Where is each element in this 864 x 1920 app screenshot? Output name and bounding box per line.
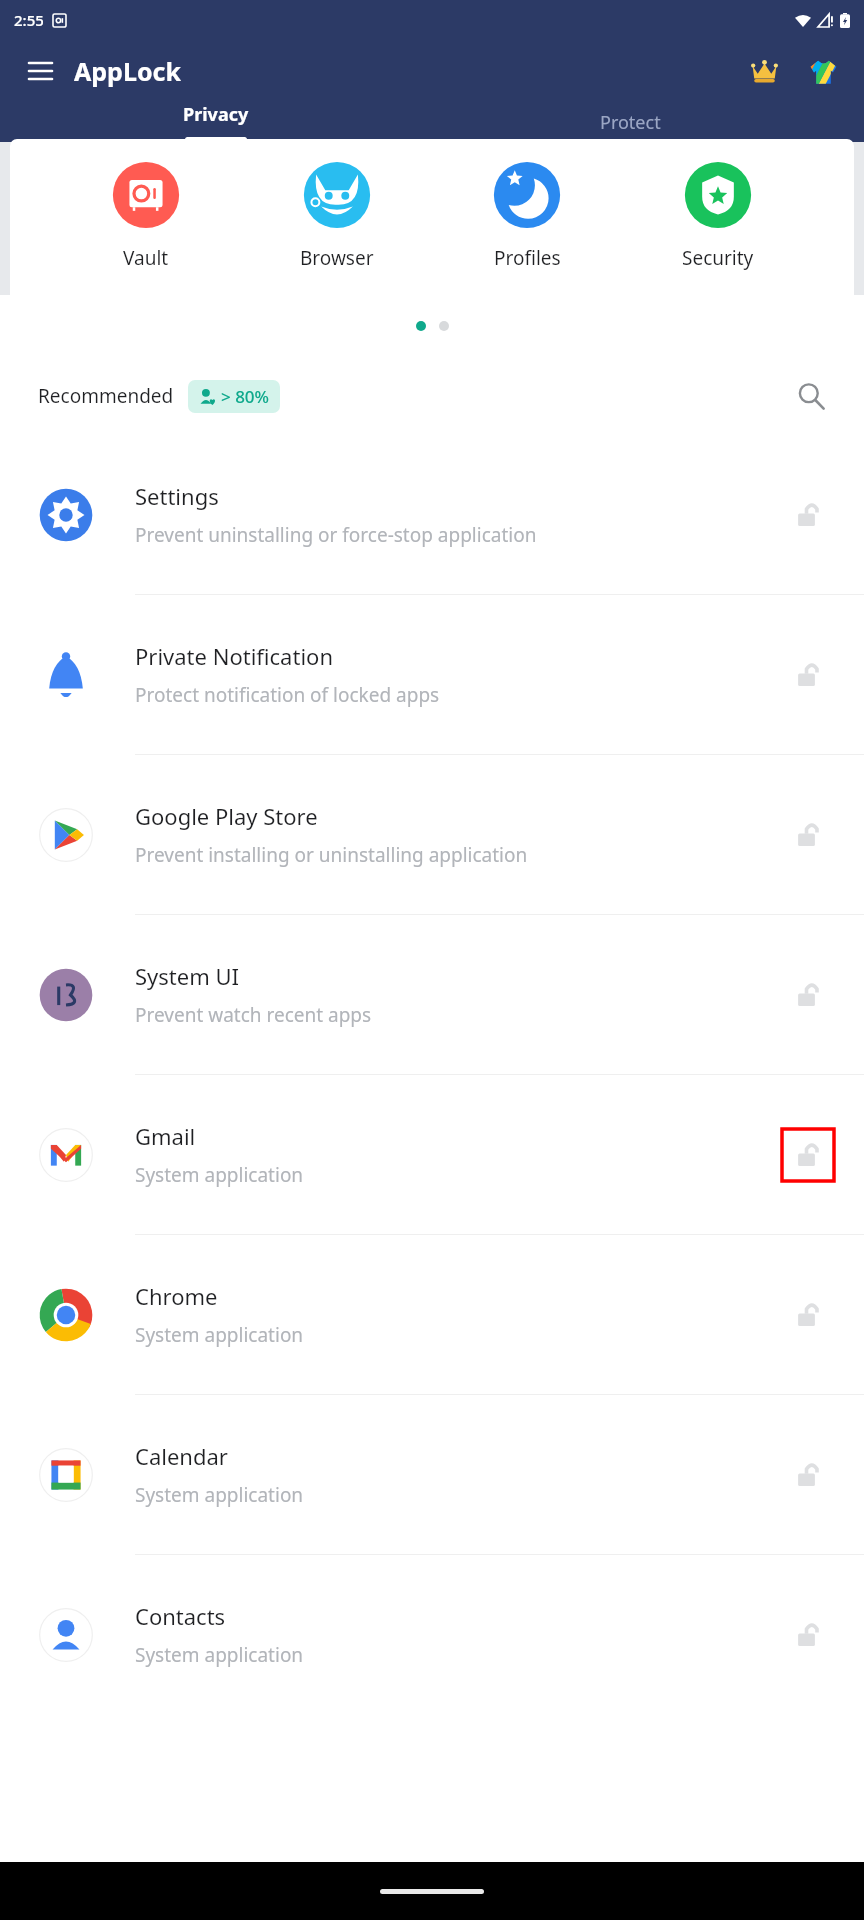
staticText: Google Play Store	[135, 801, 318, 831]
button[interactable]: VIP upgrade	[741, 48, 787, 94]
button[interactable]: Settings	[0, 435, 864, 594]
button[interactable]: Themes	[800, 48, 846, 94]
button[interactable]: Private Notification	[0, 594, 864, 754]
button[interactable]: Security	[663, 159, 773, 271]
button[interactable]: Protect	[440, 102, 820, 142]
button[interactable]: Browser	[282, 159, 392, 271]
staticText: System UI	[135, 961, 240, 991]
button[interactable]: Calendar	[0, 1394, 864, 1554]
staticText: Recommended	[38, 383, 174, 409]
button[interactable]: Lock Contacts	[782, 1609, 834, 1661]
button[interactable]: > 80%	[188, 380, 280, 413]
button[interactable]: Lock Private Notification	[782, 649, 834, 701]
button[interactable]: Lock Chrome	[782, 1289, 834, 1341]
staticText: Prevent watch recent apps	[135, 1002, 372, 1028]
staticText: Security	[682, 245, 754, 271]
staticText: 2:55	[14, 10, 44, 30]
staticText: Protect notification of locked apps	[135, 682, 440, 708]
button[interactable]: Vault	[91, 159, 201, 271]
staticText: Prevent uninstalling or force-stop appli…	[135, 522, 537, 548]
staticText: System application	[135, 1642, 304, 1668]
button[interactable]: Lock Settings	[782, 489, 834, 541]
staticText: Privacy	[183, 102, 249, 127]
button[interactable]: Google Play Store	[0, 754, 864, 914]
staticText: System application	[135, 1162, 304, 1188]
button[interactable]: Contacts	[0, 1554, 864, 1714]
button[interactable]: Lock System UI	[782, 969, 834, 1021]
staticText: Private Notification	[135, 641, 333, 671]
staticText: > 80%	[221, 385, 270, 408]
staticText: AppLock	[74, 54, 181, 88]
staticText: System application	[135, 1482, 304, 1508]
staticText: Profiles	[494, 245, 561, 271]
staticText: Gmail	[135, 1121, 196, 1151]
button[interactable]: Lock Google Play Store	[782, 809, 834, 861]
button[interactable]: Privacy	[0, 102, 432, 142]
button[interactable]: Search	[788, 373, 834, 419]
button[interactable]: Gmail	[0, 1074, 864, 1234]
button[interactable]: Open navigation menu	[18, 49, 62, 93]
staticText: Vault	[123, 245, 169, 271]
staticText: System application	[135, 1322, 304, 1348]
button[interactable]: Chrome	[0, 1234, 864, 1394]
staticText: Settings	[135, 481, 219, 511]
staticText: Protect	[600, 110, 661, 135]
button[interactable]: System UI	[0, 914, 864, 1074]
staticText: Calendar	[135, 1441, 228, 1471]
button[interactable]: Lock Calendar	[782, 1449, 834, 1501]
button[interactable]: Lock Gmail	[782, 1129, 834, 1181]
button[interactable]: Profiles	[472, 159, 582, 271]
staticText: Prevent installing or uninstalling appli…	[135, 842, 528, 868]
staticText: Browser	[300, 245, 374, 271]
staticText: Contacts	[135, 1601, 226, 1631]
staticText: Chrome	[135, 1281, 218, 1311]
